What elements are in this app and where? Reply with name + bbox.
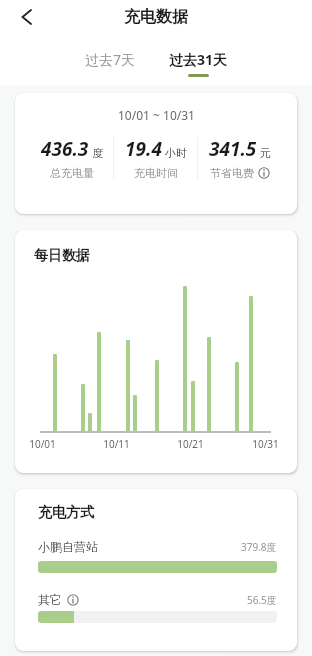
staticText: 10/21 — [177, 437, 204, 451]
staticText: 379.8度 — [241, 540, 277, 554]
staticText: 充电时间 — [134, 166, 178, 180]
button[interactable]: 过去7天 — [76, 44, 145, 77]
staticText: 度 — [92, 146, 103, 160]
staticText: 过去7天 — [85, 50, 136, 69]
staticText: 小鹏自营站 — [38, 539, 98, 554]
staticText: 节省电费 — [210, 166, 254, 180]
staticText: 436.3 — [41, 136, 89, 162]
staticText: 19.4 — [125, 136, 162, 162]
button[interactable]: 过去31天 — [160, 44, 237, 77]
staticText: 过去31天 — [169, 50, 228, 69]
staticText: 10/11 — [103, 437, 130, 451]
staticText: 充电数据 — [124, 7, 188, 27]
staticText: 341.5 — [209, 136, 257, 162]
staticText: 10/01 ~ 10/31 — [118, 107, 195, 123]
staticText: 每日数据 — [34, 247, 90, 265]
staticText: 小时 — [165, 146, 187, 160]
staticText: 10/31 — [252, 437, 279, 451]
staticText: 元 — [260, 146, 271, 160]
button[interactable] — [12, 3, 40, 31]
staticText: 其它 — [38, 592, 62, 607]
staticText: 充电方式 — [38, 504, 94, 522]
staticText: 总充电量 — [50, 166, 94, 180]
staticText: 56.5度 — [247, 593, 277, 607]
staticText: 10/01 — [29, 437, 56, 451]
